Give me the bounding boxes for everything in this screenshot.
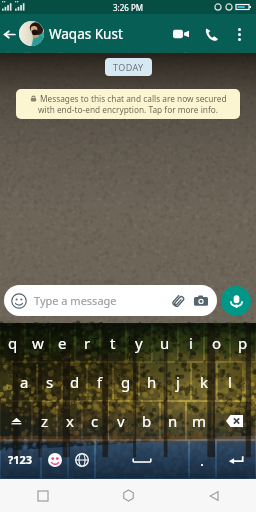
- staticText: i: [189, 333, 193, 353]
- button[interactable]: j: [166, 363, 190, 400]
- button[interactable]: e: [51, 324, 74, 361]
- staticText: t: [110, 333, 116, 353]
- button[interactable]: Voice message: [221, 286, 251, 316]
- button[interactable]: c: [83, 402, 107, 439]
- button[interactable]: Attach: [169, 292, 187, 310]
- button[interactable]: f: [88, 363, 112, 400]
- staticText: a: [20, 372, 29, 392]
- button[interactable]: k: [192, 363, 216, 400]
- staticText: x: [66, 411, 74, 431]
- button[interactable]: Messages to this chat and calls are now …: [21, 93, 235, 115]
- button[interactable]: Video call: [166, 19, 196, 49]
- button[interactable]: m: [187, 402, 211, 439]
- button[interactable]: Shift: [1, 402, 31, 439]
- staticText: h: [147, 372, 157, 392]
- button[interactable]: y: [127, 324, 151, 361]
- staticText: c: [91, 411, 99, 431]
- button[interactable]: i: [179, 324, 203, 361]
- staticText: r: [84, 333, 91, 353]
- button[interactable]: b: [135, 402, 159, 439]
- button[interactable]: x: [58, 402, 81, 439]
- staticText: .: [200, 450, 205, 470]
- staticText: e: [58, 333, 67, 353]
- button[interactable]: .: [190, 441, 215, 478]
- button[interactable]: Type a message: [11, 285, 210, 316]
- staticText: 3:26 PM: [113, 2, 144, 13]
- staticText: g: [121, 372, 131, 392]
- staticText: Messages to this chat and calls are now …: [40, 93, 227, 104]
- staticText: Type a message: [34, 293, 117, 308]
- staticText: with end-to-end encryption. Tap for more…: [38, 104, 219, 115]
- button[interactable]: o: [205, 324, 229, 361]
- staticText: y: [135, 333, 143, 353]
- staticText: TODAY: [113, 61, 144, 73]
- button[interactable]: r: [76, 324, 99, 361]
- staticText: v: [117, 411, 125, 431]
- staticText: d: [70, 372, 80, 392]
- button[interactable]: h: [140, 363, 164, 400]
- staticText: f: [97, 372, 103, 392]
- staticText: w: [32, 333, 44, 353]
- button[interactable]: Back: [0, 18, 19, 50]
- staticText: q: [8, 333, 18, 353]
- button[interactable]: Emoji: [42, 441, 67, 478]
- button[interactable]: p: [231, 324, 255, 361]
- staticText: u: [160, 333, 170, 353]
- button[interactable]: Camera: [192, 292, 210, 310]
- button[interactable]: Back: [171, 479, 256, 512]
- button[interactable]: Enter: [217, 441, 255, 478]
- button[interactable]: q: [1, 324, 24, 361]
- button[interactable]: d: [63, 363, 86, 400]
- button[interactable]: Space: [96, 441, 188, 478]
- button[interactable]: w: [26, 324, 49, 361]
- staticText: p: [238, 333, 248, 353]
- staticText: z: [41, 411, 49, 431]
- button[interactable]: Backspace: [213, 402, 255, 439]
- staticText: j: [176, 372, 180, 392]
- staticText: b: [142, 411, 152, 431]
- button[interactable]: z: [33, 402, 56, 439]
- staticText: Waqas Kust: [49, 25, 123, 43]
- button[interactable]: Recents: [0, 479, 86, 512]
- staticText: k: [200, 372, 209, 392]
- button[interactable]: l: [218, 363, 242, 400]
- button[interactable]: s: [38, 363, 61, 400]
- button[interactable]: a: [13, 363, 36, 400]
- button[interactable]: Call: [196, 19, 226, 49]
- button[interactable]: u: [153, 324, 177, 361]
- button[interactable]: Profile photo: [19, 21, 44, 46]
- button[interactable]: v: [109, 402, 133, 439]
- staticText: n: [168, 411, 178, 431]
- button[interactable]: TODAY: [113, 61, 144, 73]
- button[interactable]: n: [161, 402, 185, 439]
- button[interactable]: More options: [226, 21, 252, 47]
- staticText: m: [192, 411, 207, 431]
- staticText: o: [212, 333, 222, 353]
- staticText: ?123: [8, 452, 33, 467]
- staticText: s: [46, 372, 54, 392]
- button[interactable]: Home: [86, 479, 171, 512]
- button[interactable]: g: [114, 363, 138, 400]
- button[interactable]: ?123: [1, 441, 40, 478]
- button[interactable]: t: [101, 324, 125, 361]
- button[interactable]: Language: [69, 441, 94, 478]
- staticText: l: [228, 372, 232, 392]
